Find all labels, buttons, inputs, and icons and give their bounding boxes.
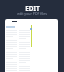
staticText: EDIT bbox=[25, 4, 40, 13]
staticText: edit your PDF files bbox=[17, 11, 47, 16]
